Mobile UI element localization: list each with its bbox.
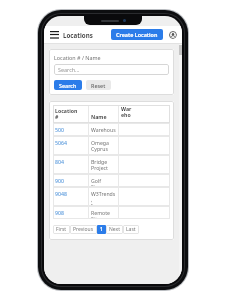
staticText: 900: [55, 177, 64, 184]
staticText: Next: [109, 226, 120, 233]
button[interactable]: 900: [53, 174, 170, 187]
button[interactable]: Next: [106, 225, 123, 234]
button[interactable]: First: [53, 225, 70, 234]
staticText: Last: [126, 226, 136, 233]
staticText: Search...: [58, 66, 80, 73]
button[interactable]: 908: [53, 206, 170, 219]
staticText: Create Location: [116, 31, 158, 38]
button[interactable]: Menu: [49, 29, 60, 40]
staticText: Location #: [55, 107, 78, 120]
button[interactable]: Search: [54, 80, 82, 90]
staticText: Location # / Name: [54, 54, 101, 61]
staticText: Golf Sierra: [91, 177, 116, 187]
staticText: Search: [59, 82, 77, 89]
staticText: Remote Site: [91, 209, 116, 219]
button[interactable]: 9048: [53, 187, 170, 206]
button[interactable]: Last: [123, 225, 139, 234]
staticText: W3Trends, Inc.: [91, 190, 116, 206]
staticText: Warehouse: [91, 126, 116, 136]
staticText: Name: [91, 113, 107, 120]
button[interactable]: 1: [97, 225, 106, 234]
staticText: Reset: [91, 82, 106, 89]
staticText: Omega Cyprus: [91, 139, 109, 153]
staticText: 908: [55, 209, 64, 216]
staticText: Warehouse: [121, 105, 134, 120]
staticText: 804: [55, 158, 64, 165]
button[interactable]: 500: [53, 123, 170, 136]
staticText: First: [56, 226, 67, 233]
button[interactable]: Create Location: [111, 29, 163, 40]
button[interactable]: Search...: [54, 64, 169, 75]
staticText: 500: [55, 126, 64, 133]
staticText: 1: [100, 226, 103, 233]
button[interactable]: Previous: [70, 225, 97, 234]
button[interactable]: Reset: [86, 80, 111, 90]
staticText: Previous: [73, 226, 94, 233]
staticText: 5064: [55, 139, 67, 146]
button[interactable]: 5064: [53, 136, 170, 155]
button[interactable]: 804: [53, 155, 170, 174]
staticText: 9048: [55, 190, 67, 197]
staticText: Bridge Project: [91, 158, 108, 172]
staticText: Locations: [63, 31, 93, 39]
button[interactable]: Account: [168, 30, 177, 39]
